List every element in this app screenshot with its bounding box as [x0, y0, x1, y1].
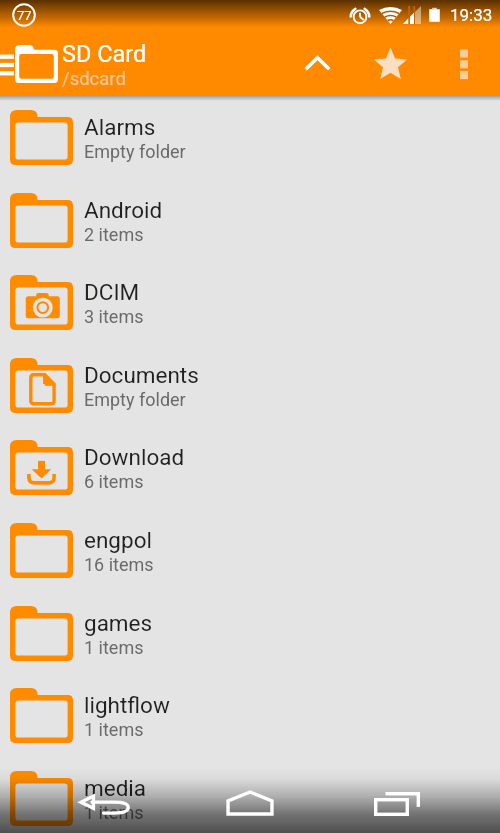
staticText: 19:33: [450, 5, 493, 25]
staticText: 3 items: [84, 306, 144, 327]
staticText: lightflow: [84, 692, 170, 718]
staticText: Download: [84, 444, 185, 470]
staticText: games: [84, 610, 153, 636]
staticText: Empty folder: [84, 141, 186, 162]
button[interactable]: Open navigation drawer: [0, 48, 14, 82]
button[interactable]: engpol: [0, 509, 500, 592]
button[interactable]: media: [0, 757, 500, 833]
staticText: 77: [17, 8, 32, 23]
staticText: /sdcard: [62, 68, 126, 90]
button[interactable]: lightflow: [0, 674, 500, 757]
staticText: Documents: [84, 362, 199, 388]
button[interactable]: More options: [434, 30, 494, 96]
button[interactable]: games: [0, 592, 500, 675]
staticText: 2 items: [84, 224, 144, 245]
button[interactable]: Home: [177, 767, 323, 833]
staticText: SD Card: [62, 40, 147, 68]
staticText: Android: [84, 197, 163, 223]
button[interactable]: Recent apps: [324, 767, 470, 833]
staticText: 6 items: [84, 471, 144, 492]
staticText: media: [84, 775, 147, 801]
staticText: Empty folder: [84, 389, 186, 410]
button[interactable]: Back: [31, 767, 177, 833]
staticText: 1 items: [84, 637, 144, 658]
button[interactable]: Favorites: [354, 30, 427, 96]
button[interactable]: Go up: [281, 30, 353, 96]
button[interactable]: Android: [0, 179, 500, 262]
button[interactable]: DCIM: [0, 261, 500, 344]
staticText: 1 items: [84, 719, 144, 740]
staticText: Alarms: [84, 114, 156, 140]
staticText: 1 items: [84, 802, 144, 823]
staticText: 16 items: [84, 554, 154, 575]
staticText: engpol: [84, 527, 152, 553]
button[interactable]: Documents: [0, 344, 500, 427]
button[interactable]: Alarms: [0, 96, 500, 179]
button[interactable]: Download: [0, 426, 500, 509]
staticText: DCIM: [84, 279, 140, 305]
